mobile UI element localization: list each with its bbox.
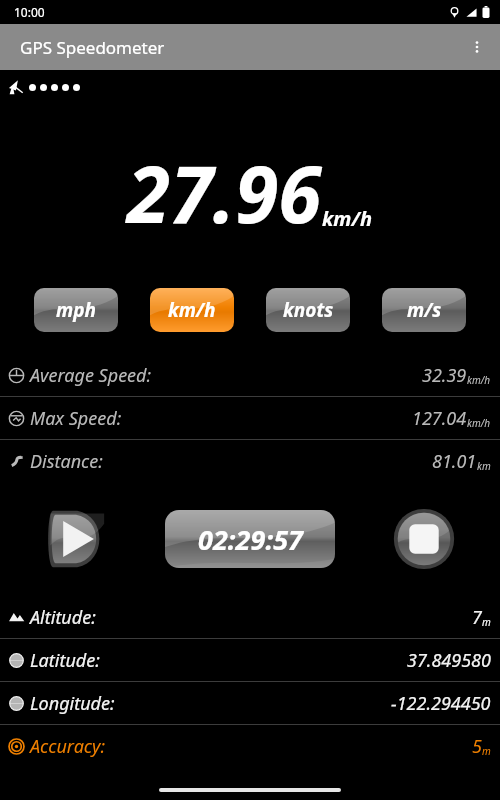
staticText: 37.849580: [407, 648, 491, 673]
staticText: Average Speed:: [30, 363, 152, 388]
button[interactable]: Start: [44, 507, 108, 571]
staticText: 32.39: [422, 363, 467, 388]
button[interactable]: Distance:: [0, 440, 500, 482]
staticText: 7: [472, 605, 482, 630]
button[interactable]: mph: [34, 288, 118, 332]
staticText: Longitude:: [30, 691, 115, 716]
button[interactable]: Accuracy:: [0, 725, 500, 767]
staticText: GPS Speedometer: [20, 36, 165, 59]
button[interactable]: m/s: [382, 288, 466, 332]
staticText: 10:00: [14, 4, 45, 20]
staticText: 5: [472, 734, 482, 759]
staticText: Altitude:: [30, 605, 96, 630]
staticText: Accuracy:: [30, 734, 106, 759]
button[interactable]: Stop: [392, 507, 456, 571]
staticText: 27.96: [127, 140, 322, 246]
staticText: 127.04: [412, 406, 467, 431]
staticText: -122.294450: [391, 691, 491, 716]
staticText: Distance:: [30, 449, 103, 474]
staticText: knots: [283, 297, 334, 323]
staticText: km/h: [168, 297, 216, 323]
button[interactable]: Altitude:: [0, 596, 500, 638]
staticText: m/s: [407, 297, 442, 323]
button[interactable]: knots: [266, 288, 350, 332]
staticText: km/h: [467, 416, 491, 430]
staticText: m: [482, 615, 491, 629]
button[interactable]: More options: [454, 24, 500, 70]
staticText: 81.01: [432, 449, 477, 474]
button[interactable]: km/h: [150, 288, 234, 332]
button[interactable]: Max Speed:: [0, 397, 500, 439]
staticText: Latitude:: [30, 648, 100, 673]
button[interactable]: 02:29:57: [165, 510, 335, 568]
staticText: mph: [56, 297, 96, 323]
button[interactable]: Average Speed:: [0, 354, 500, 396]
staticText: km/h: [467, 373, 491, 387]
staticText: km/h: [322, 205, 373, 232]
staticText: Max Speed:: [30, 406, 122, 431]
button[interactable]: Latitude:: [0, 639, 500, 681]
staticText: km: [477, 459, 491, 473]
button[interactable]: Longitude:: [0, 682, 500, 724]
staticText: m: [482, 744, 491, 758]
staticText: 02:29:57: [198, 521, 303, 558]
